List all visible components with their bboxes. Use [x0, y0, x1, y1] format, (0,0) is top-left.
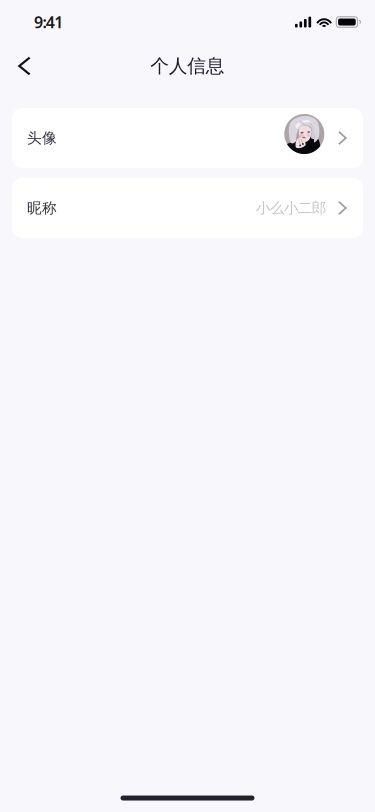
staticText: 小么小二郎 — [256, 199, 327, 217]
staticText: 头像 — [27, 129, 57, 147]
button[interactable]: 昵称 — [12, 178, 363, 238]
button[interactable]: 头像 — [12, 108, 363, 168]
button[interactable]: 返回 — [2, 44, 46, 88]
staticText: 个人信息 — [150, 54, 225, 77]
staticText: 9:41 — [34, 11, 63, 33]
staticText: 昵称 — [27, 199, 57, 217]
